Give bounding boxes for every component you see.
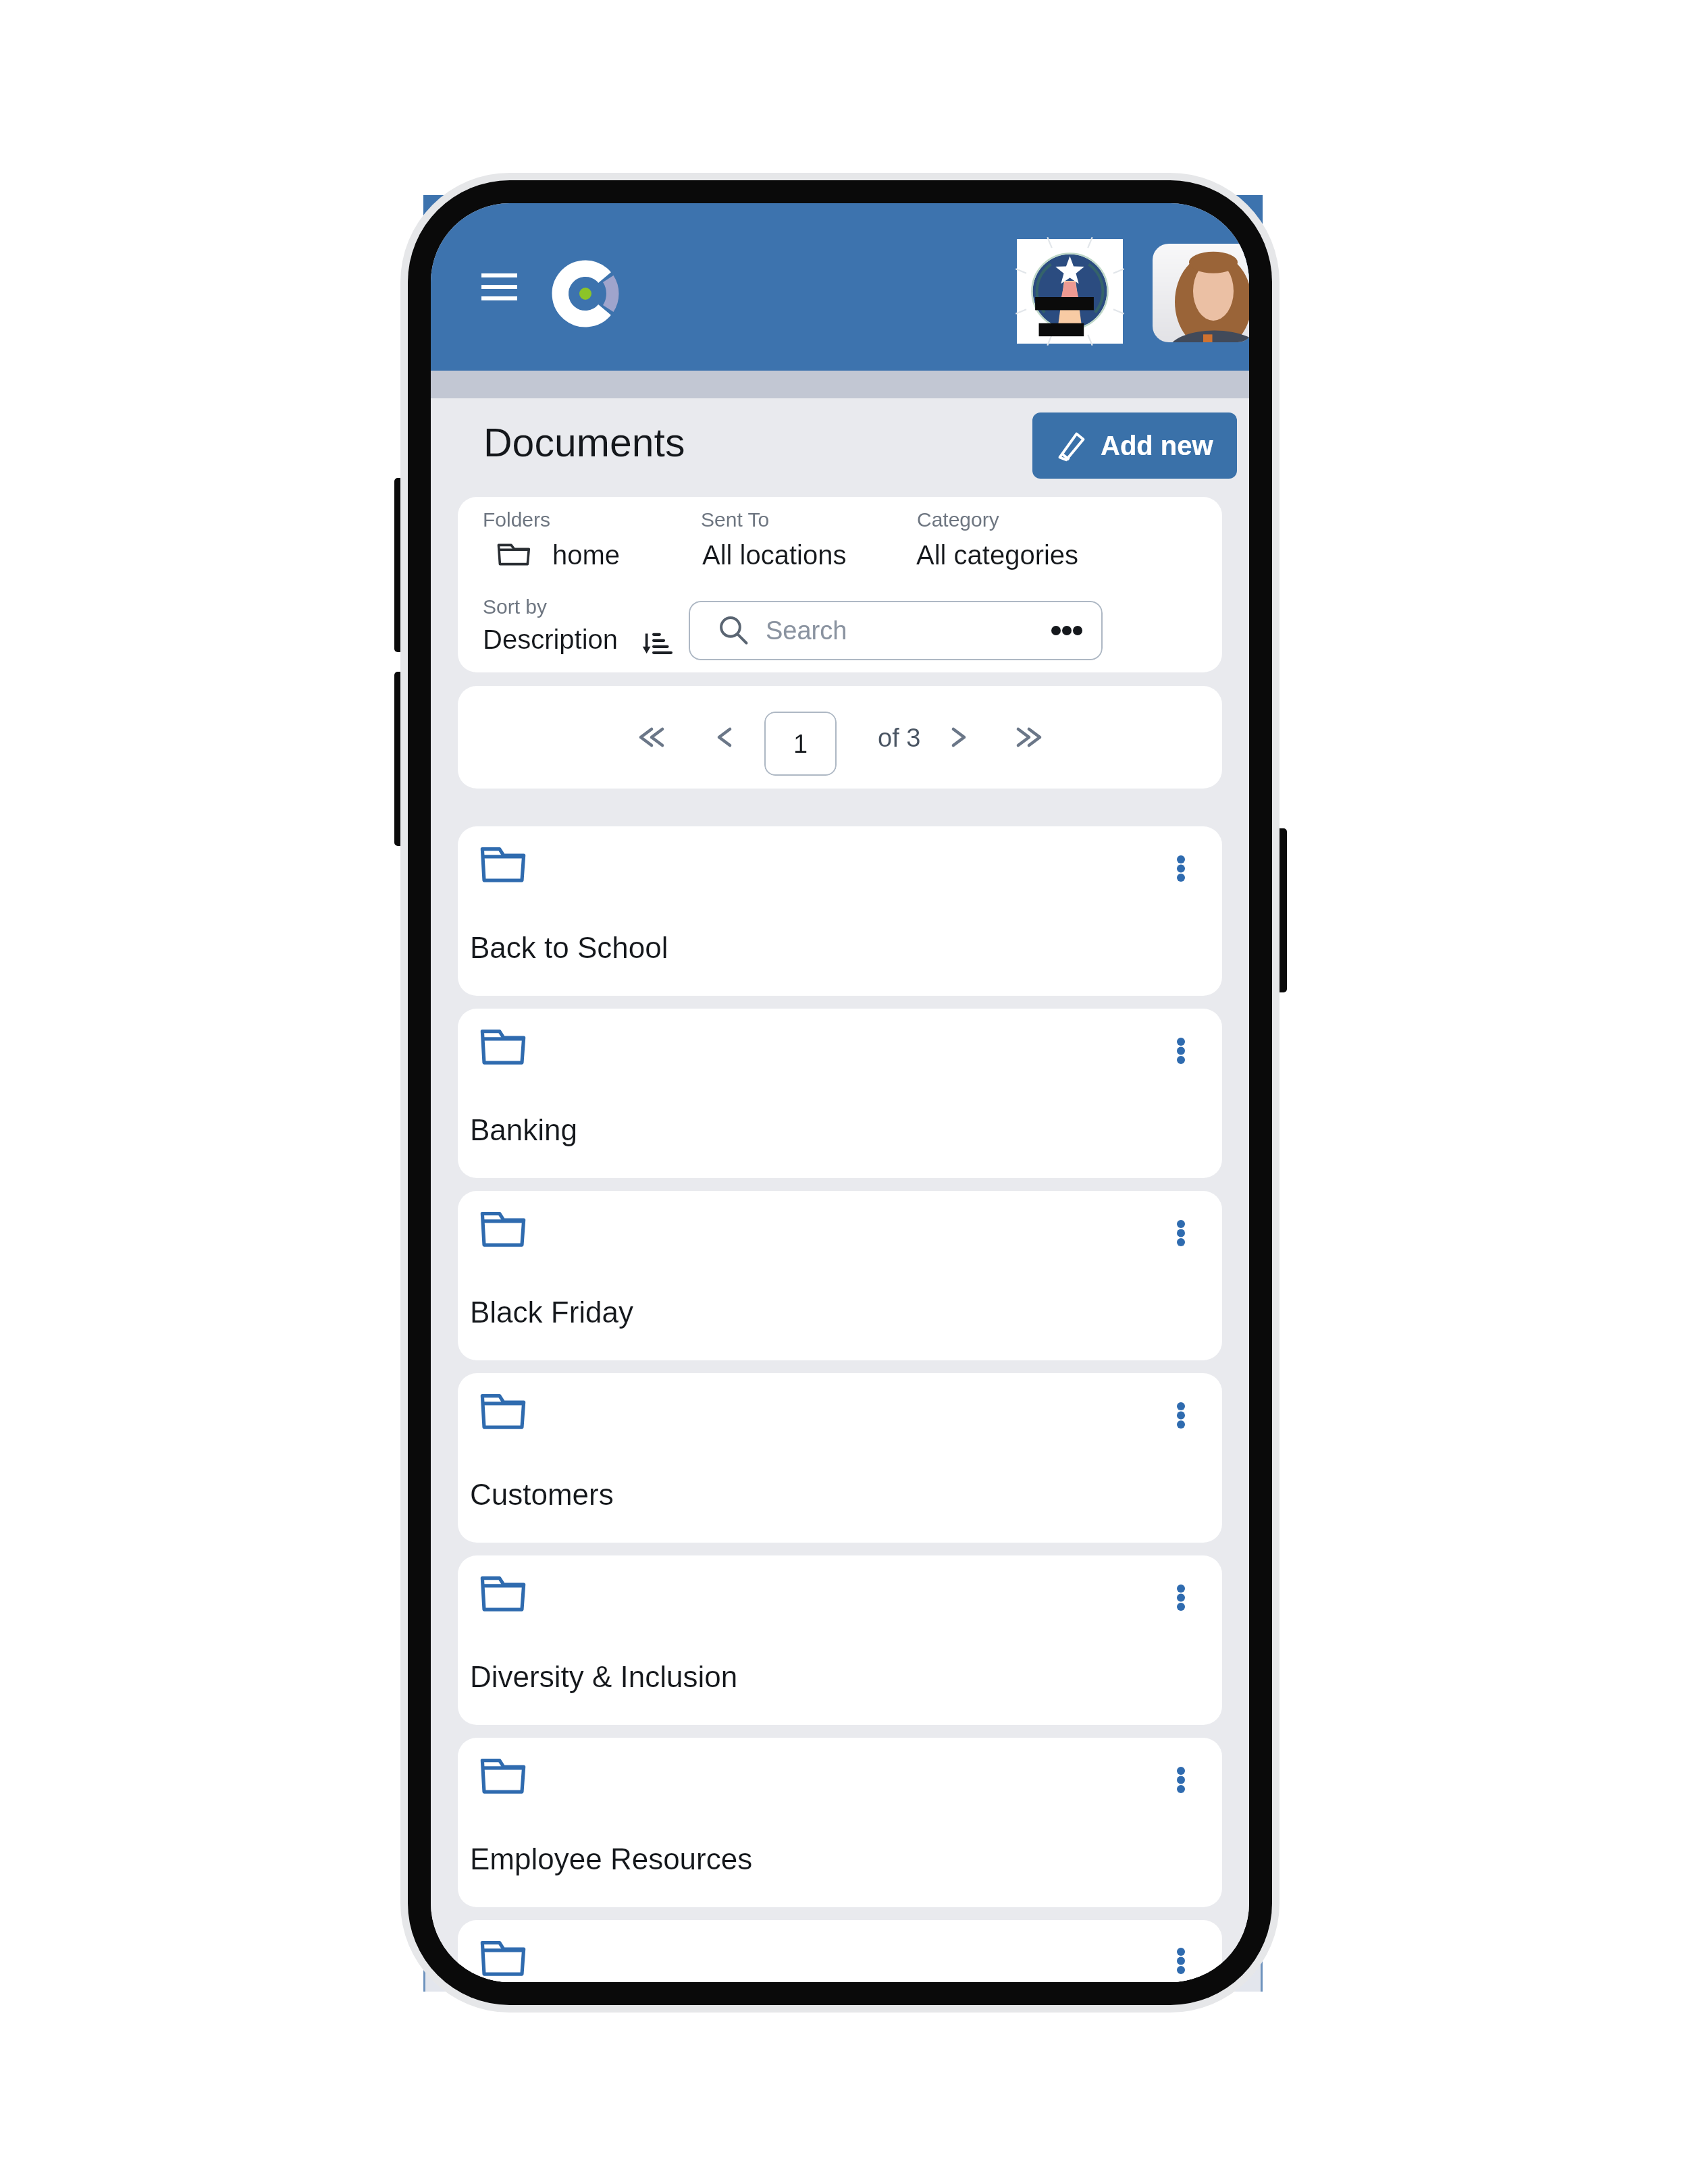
button[interactable]: More options: [458, 1555, 1222, 1725]
button[interactable]: Add new: [1032, 412, 1237, 479]
staticText: Black Friday: [470, 1296, 634, 1329]
button[interactable]: More options: [458, 1191, 1222, 1360]
button[interactable]: More options: [1159, 1018, 1203, 1083]
staticText: Search: [766, 616, 847, 645]
button[interactable]: Previous page: [700, 713, 749, 762]
staticText: Customers: [470, 1478, 614, 1511]
button[interactable]: Rising Star award: [1017, 239, 1123, 344]
staticText: Sent To: [701, 508, 770, 531]
button[interactable]: 1: [764, 712, 837, 776]
staticText: Folders: [483, 508, 551, 531]
staticText: Category: [917, 508, 999, 531]
staticText: home: [552, 540, 621, 570]
staticText: Add new: [1101, 431, 1213, 461]
button[interactable]: More options: [458, 1920, 1222, 1982]
button[interactable]: More options: [1159, 1200, 1203, 1265]
button[interactable]: Next page: [1005, 713, 1053, 762]
button[interactable]: More options: [1159, 1929, 1203, 1982]
button[interactable]: More options: [458, 1009, 1222, 1178]
staticText: of 3: [878, 724, 921, 752]
button[interactable]: More options: [458, 1738, 1222, 1907]
staticText: 1: [793, 730, 808, 758]
staticText: Description: [483, 624, 618, 655]
button[interactable]: More options: [458, 826, 1222, 996]
staticText: Diversity & Inclusion: [470, 1660, 738, 1693]
button[interactable]: More options: [458, 1373, 1222, 1543]
button[interactable]: Menu: [469, 264, 529, 310]
staticText: Employee Resources: [470, 1842, 753, 1875]
button[interactable]: Profile: [1153, 244, 1249, 342]
staticText: Sort by: [483, 595, 548, 618]
staticText: All categories: [916, 540, 1079, 570]
staticText: Banking: [470, 1113, 578, 1146]
button[interactable]: Next page: [934, 713, 983, 762]
button[interactable]: More options: [1159, 1383, 1203, 1447]
button[interactable]: Home: [548, 257, 623, 331]
button[interactable]: More options: [1159, 1565, 1203, 1630]
button[interactable]: Search: [689, 601, 1103, 660]
staticText: All locations: [702, 540, 847, 570]
button[interactable]: Previous page: [627, 713, 676, 762]
button[interactable]: More options: [1159, 1747, 1203, 1812]
staticText: Back to School: [470, 931, 668, 964]
staticText: Documents: [483, 421, 685, 465]
button[interactable]: More options: [1159, 836, 1203, 901]
